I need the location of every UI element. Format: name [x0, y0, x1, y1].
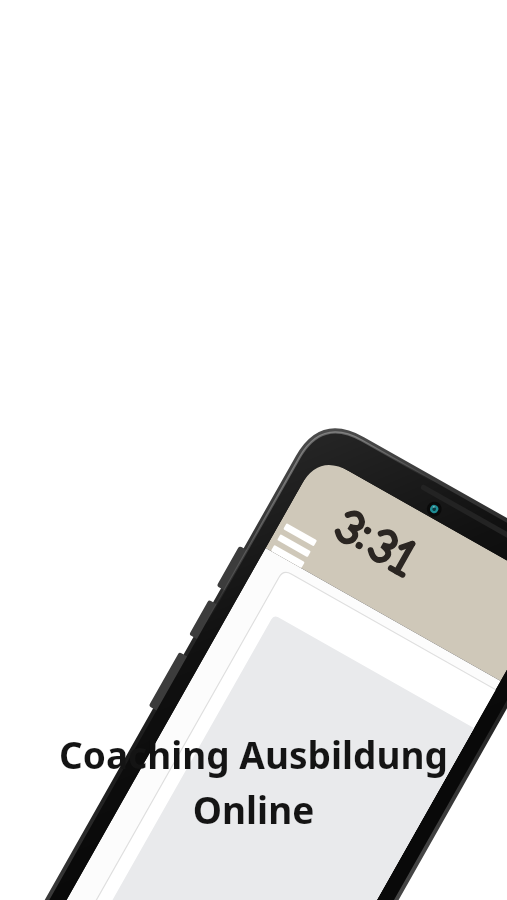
staticText: Online	[0, 784, 507, 834]
staticText: Coaching Ausbildung	[0, 729, 507, 779]
button[interactable]: Coaching Ausbildung	[0, 729, 507, 834]
